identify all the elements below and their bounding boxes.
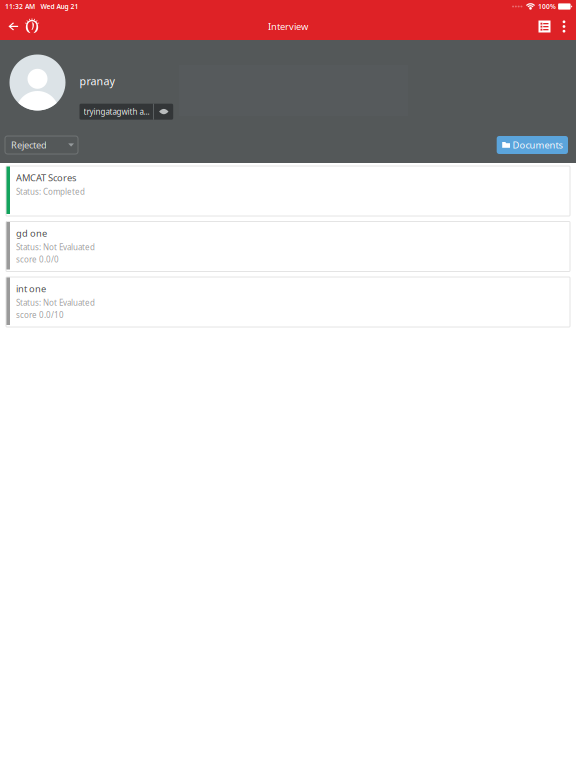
button[interactable]: AMCAT Scores xyxy=(6,166,570,216)
staticText: 100% xyxy=(538,2,556,11)
staticText: tryingatagwith a... xyxy=(83,106,149,117)
staticText: Wed Aug 21 xyxy=(40,2,78,11)
staticText: 11:32 AM xyxy=(5,2,35,11)
staticText: Interview xyxy=(268,20,308,33)
staticText: Status: Not Evaluated xyxy=(16,242,95,252)
staticText: Status: Not Evaluated xyxy=(16,297,95,308)
staticText: Status: Completed xyxy=(16,186,85,197)
staticText: pranay xyxy=(79,74,114,88)
staticText: gd one xyxy=(16,227,47,239)
button[interactable]: Documents list xyxy=(533,13,556,40)
staticText: AMCAT Scores xyxy=(16,171,76,184)
button[interactable]: Documents xyxy=(497,136,568,154)
button[interactable]: Home xyxy=(23,13,41,40)
staticText: score 0.0/0 xyxy=(16,254,59,265)
staticText: int one xyxy=(16,282,46,295)
staticText: score 0.0/10 xyxy=(16,309,64,320)
staticText: Rejected xyxy=(11,139,47,151)
button[interactable]: int one xyxy=(6,277,570,327)
button[interactable]: gd one xyxy=(6,221,570,271)
staticText: Documents xyxy=(512,139,562,151)
button[interactable]: Back xyxy=(4,13,23,40)
button[interactable]: Rejected xyxy=(5,136,78,154)
button[interactable]: More options xyxy=(556,13,572,40)
